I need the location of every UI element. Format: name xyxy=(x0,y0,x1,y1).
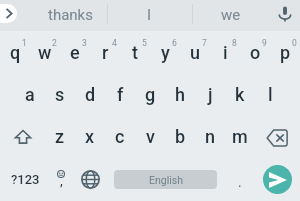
staticText: 3 xyxy=(82,38,87,48)
staticText: m xyxy=(232,126,248,147)
staticText: f xyxy=(117,84,124,105)
button[interactable]: c xyxy=(105,115,135,158)
button[interactable]: l xyxy=(255,73,285,115)
staticText: v xyxy=(146,126,155,147)
staticText: u xyxy=(190,42,201,63)
staticText: z xyxy=(55,126,65,147)
staticText: n xyxy=(205,126,216,147)
button[interactable]: h xyxy=(165,73,195,115)
button[interactable]: we xyxy=(192,0,270,31)
button[interactable]: z xyxy=(45,115,75,158)
staticText: r xyxy=(102,42,109,63)
staticText: d xyxy=(85,84,96,105)
staticText: English xyxy=(149,174,183,186)
staticText: i xyxy=(223,42,228,63)
button[interactable]: Send xyxy=(263,165,292,194)
button[interactable]: thanks xyxy=(34,0,107,31)
button[interactable]: e xyxy=(60,31,90,73)
button[interactable]: . xyxy=(225,158,254,201)
staticText: we xyxy=(221,6,241,24)
button[interactable]: Emoji xyxy=(48,158,74,201)
button[interactable]: Change language xyxy=(76,158,105,201)
staticText: h xyxy=(175,84,186,105)
staticText: 7 xyxy=(202,38,207,48)
staticText: thanks xyxy=(48,6,93,24)
button[interactable]: w xyxy=(30,31,60,73)
button[interactable]: s xyxy=(45,73,75,115)
staticText: 6 xyxy=(172,38,177,48)
staticText: p xyxy=(280,42,291,63)
button[interactable]: y xyxy=(150,31,180,73)
staticText: 5 xyxy=(142,38,147,48)
staticText: o xyxy=(250,42,261,63)
staticText: l xyxy=(268,84,273,105)
staticText: t xyxy=(132,42,138,63)
button[interactable]: Voice input xyxy=(270,0,300,31)
button[interactable]: b xyxy=(165,115,195,158)
button[interactable]: a xyxy=(15,73,45,115)
staticText: q xyxy=(10,42,21,63)
button[interactable]: f xyxy=(105,73,135,115)
staticText: 0 xyxy=(292,38,297,48)
staticText: c xyxy=(115,126,125,147)
button[interactable]: q xyxy=(0,31,30,73)
staticText: e xyxy=(70,42,80,63)
button[interactable]: Shift xyxy=(0,115,45,158)
button[interactable]: i xyxy=(210,31,240,73)
button[interactable]: j xyxy=(195,73,225,115)
button[interactable]: English xyxy=(114,170,217,189)
staticText: k xyxy=(235,84,245,105)
button[interactable]: k xyxy=(225,73,255,115)
staticText: j xyxy=(208,84,213,105)
button[interactable]: x xyxy=(75,115,105,158)
staticText: s xyxy=(55,84,65,105)
staticText: 1 xyxy=(22,38,27,48)
staticText: x xyxy=(85,126,95,147)
button[interactable]: g xyxy=(135,73,165,115)
button[interactable]: n xyxy=(195,115,225,158)
button[interactable]: m xyxy=(225,115,255,158)
staticText: b xyxy=(175,126,186,147)
staticText: 4 xyxy=(112,38,117,48)
button[interactable]: v xyxy=(135,115,165,158)
button[interactable]: p xyxy=(270,31,300,73)
button[interactable]: t xyxy=(120,31,150,73)
button[interactable]: Backspace xyxy=(255,115,300,158)
staticText: y xyxy=(161,42,170,63)
staticText: 8 xyxy=(232,38,237,48)
button[interactable]: More suggestions xyxy=(0,4,17,23)
staticText: g xyxy=(145,84,156,105)
staticText: 9 xyxy=(262,38,267,48)
staticText: . xyxy=(238,174,242,190)
button[interactable]: r xyxy=(90,31,120,73)
staticText: ?123 xyxy=(11,172,40,187)
staticText: a xyxy=(25,84,35,105)
button[interactable]: o xyxy=(240,31,270,73)
staticText: , xyxy=(60,173,63,189)
staticText: I xyxy=(147,6,152,24)
button[interactable]: I xyxy=(107,0,192,31)
staticText: 2 xyxy=(52,38,57,48)
button[interactable]: u xyxy=(180,31,210,73)
button[interactable]: ?123 xyxy=(0,158,50,201)
button[interactable]: d xyxy=(75,73,105,115)
staticText: w xyxy=(38,42,52,63)
